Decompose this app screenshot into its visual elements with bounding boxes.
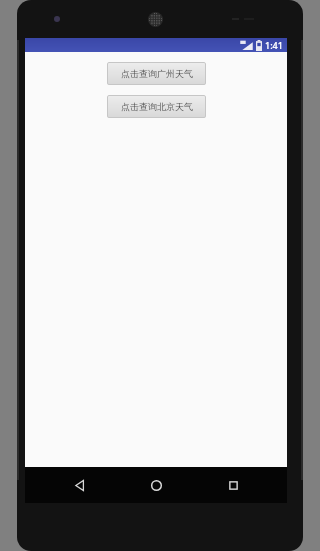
button[interactable]: 点击查询北京天气: [107, 95, 206, 118]
staticText: 点击查询广州天气: [121, 68, 193, 79]
button[interactable]: Recent apps: [210, 467, 256, 503]
staticText: 1:41: [265, 39, 283, 51]
staticText: 点击查询北京天气: [121, 101, 193, 112]
button[interactable]: Home: [133, 467, 179, 503]
button[interactable]: Back: [56, 467, 102, 503]
button[interactable]: 点击查询广州天气: [107, 62, 206, 85]
